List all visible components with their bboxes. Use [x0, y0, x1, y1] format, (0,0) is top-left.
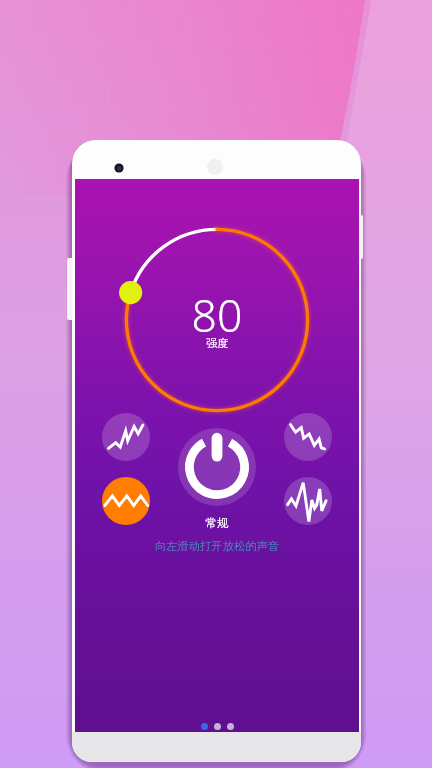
staticText: 向左滑动打开放松的声音: [75, 539, 359, 553]
button[interactable]: Gentle wave mode: [102, 413, 150, 461]
staticText: 常规: [75, 516, 359, 530]
button[interactable]: Pulse mode: [284, 477, 332, 525]
staticText: 强度: [117, 336, 317, 350]
button[interactable]: Descending mode: [284, 413, 332, 461]
staticText: 80: [117, 284, 317, 345]
button[interactable]: Zigzag mode: [102, 477, 150, 525]
button[interactable]: Power: [178, 428, 256, 506]
